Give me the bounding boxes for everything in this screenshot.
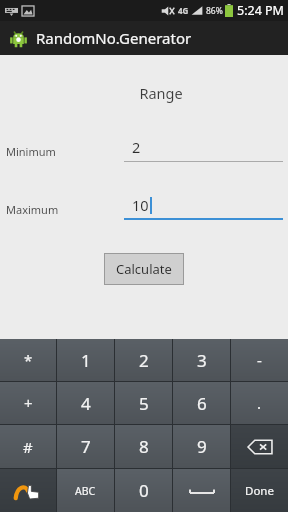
- button[interactable]: 5: [115, 382, 172, 424]
- button[interactable]: Backspace: [231, 425, 288, 468]
- button[interactable]: 7: [57, 425, 114, 468]
- staticText: Range: [17, 83, 288, 103]
- button[interactable]: +: [0, 382, 56, 424]
- staticText: 5:24 PM: [237, 2, 284, 19]
- button[interactable]: 9: [173, 425, 230, 468]
- button[interactable]: 6: [173, 382, 230, 424]
- button[interactable]: 3: [173, 339, 230, 381]
- button[interactable]: -: [231, 339, 288, 381]
- button[interactable]: 8: [115, 425, 172, 468]
- staticText: RandomNo.Generator: [36, 28, 192, 48]
- button[interactable]: 2: [124, 128, 283, 162]
- staticText: 6: [197, 392, 207, 415]
- staticText: 86%: [206, 5, 223, 17]
- button[interactable]: Done: [231, 469, 288, 512]
- button[interactable]: 4: [57, 382, 114, 424]
- staticText: 2: [132, 137, 141, 157]
- staticText: -: [257, 350, 262, 370]
- staticText: 10: [132, 195, 149, 215]
- staticText: .: [257, 393, 262, 413]
- staticText: 8: [139, 435, 149, 458]
- button[interactable]: 10: [124, 186, 283, 220]
- staticText: Maximum: [6, 202, 59, 217]
- staticText: 1: [81, 349, 91, 372]
- staticText: 4: [81, 392, 91, 415]
- staticText: 5: [139, 392, 149, 415]
- button[interactable]: Space: [173, 469, 230, 512]
- button[interactable]: ABC: [57, 469, 114, 512]
- button[interactable]: 0: [115, 469, 172, 512]
- staticText: 4G: [178, 5, 189, 16]
- staticText: *: [24, 350, 33, 370]
- staticText: #: [23, 437, 33, 457]
- staticText: 0: [139, 479, 149, 502]
- button[interactable]: 1: [57, 339, 114, 381]
- staticText: 9: [197, 435, 207, 458]
- staticText: Done: [245, 483, 274, 499]
- staticText: 7: [81, 435, 91, 458]
- staticText: 2: [139, 349, 149, 372]
- button[interactable]: Keyboard input method: [0, 469, 56, 512]
- staticText: 3: [197, 349, 207, 372]
- staticText: +: [24, 393, 33, 413]
- button[interactable]: *: [0, 339, 56, 381]
- button[interactable]: 2: [115, 339, 172, 381]
- staticText: ABC: [75, 484, 96, 498]
- button[interactable]: #: [0, 425, 56, 468]
- staticText: Calculate: [116, 260, 172, 278]
- button[interactable]: Calculate: [105, 254, 183, 284]
- button[interactable]: .: [231, 382, 288, 424]
- staticText: Minimum: [6, 144, 56, 159]
